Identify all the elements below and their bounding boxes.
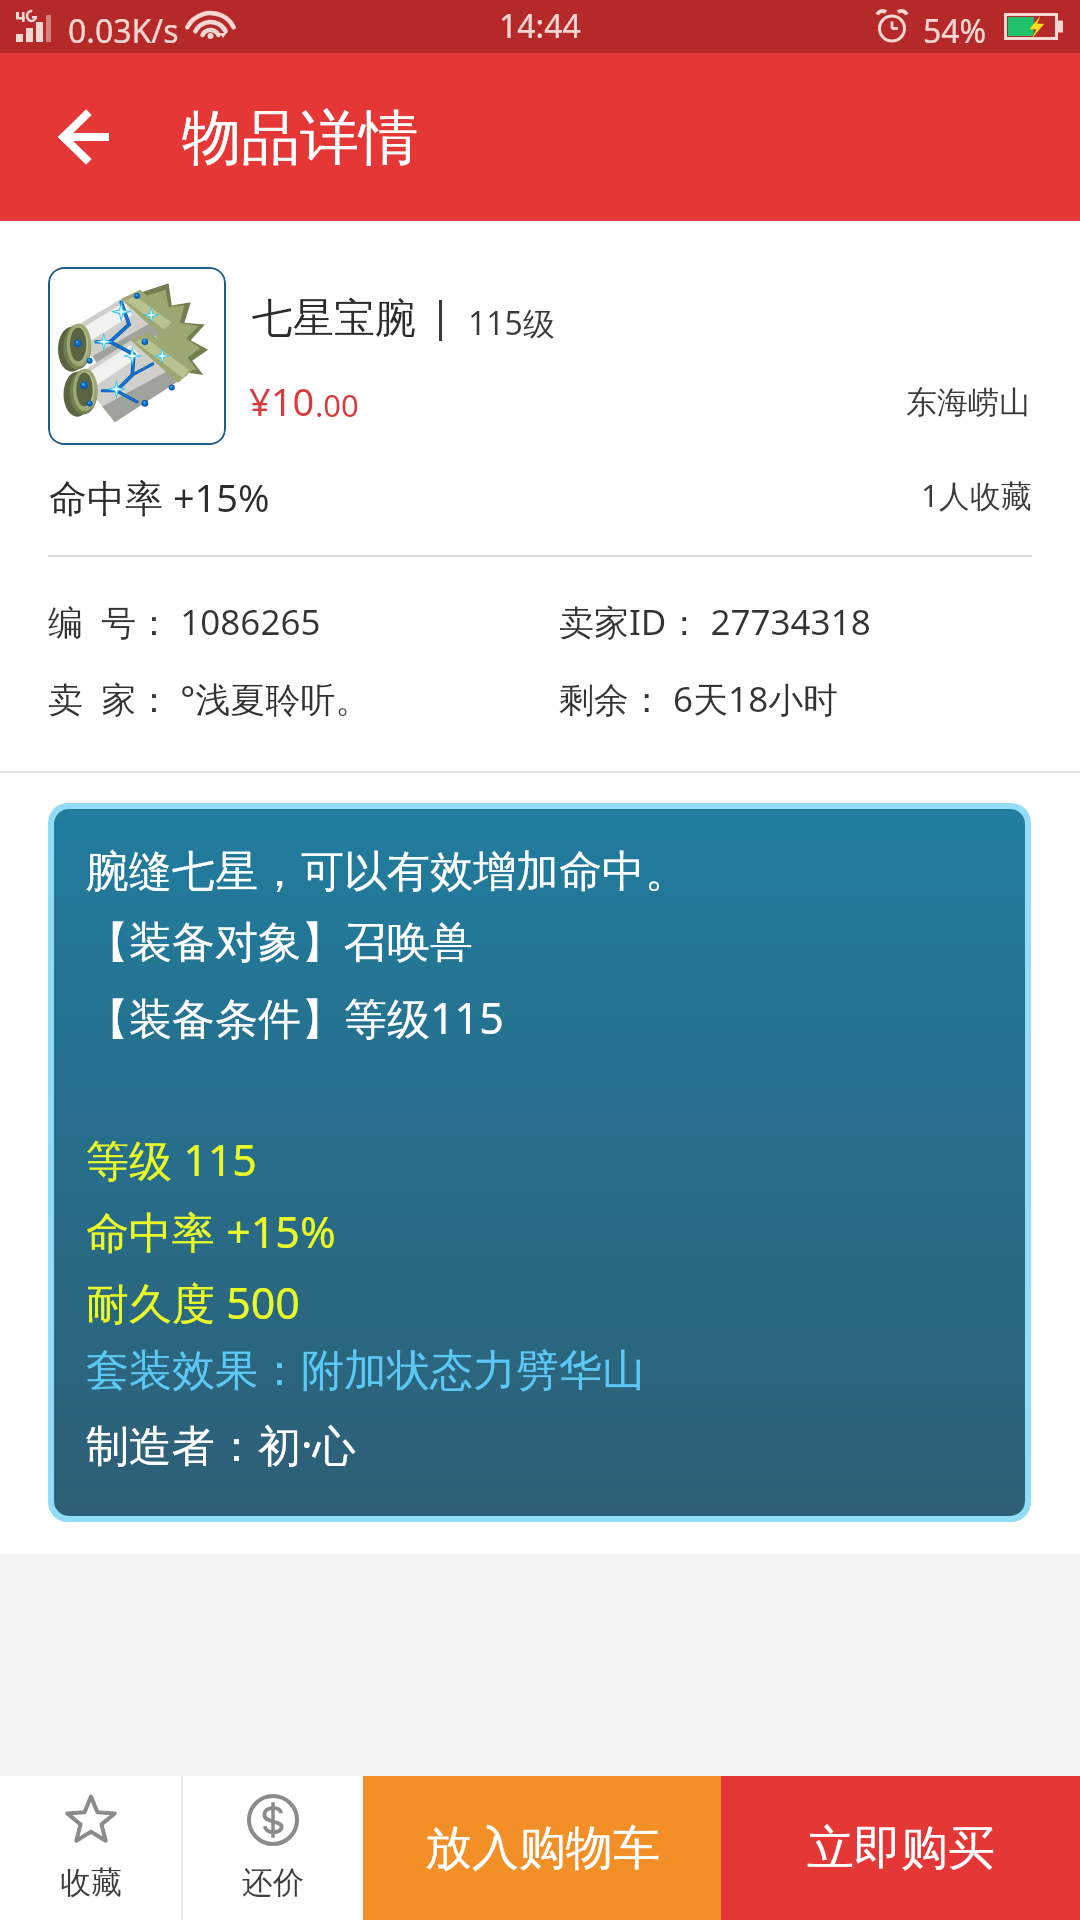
staticText: 腕缝七星，可以有效增加命中。 [86, 845, 688, 899]
staticText: 54% [923, 9, 987, 53]
button[interactable]: 商品图片 [0, 221, 1080, 555]
staticText: 立即购买 [807, 1819, 995, 1878]
button[interactable]: 还价 [183, 1776, 363, 1920]
staticText: 还价 [242, 1863, 304, 1902]
staticText: 115级 [468, 301, 555, 345]
staticText: 耐久度 500 [86, 1273, 300, 1332]
staticText: 放入购物车 [425, 1819, 660, 1878]
staticText: 七星宝腕 [252, 293, 416, 345]
staticText: 编 号： 1086265 [48, 598, 321, 646]
button[interactable]: 商品图片 [48, 267, 226, 445]
staticText: 套装效果：附加状态力劈华山 [86, 1344, 645, 1398]
staticText: 【装备对象】召唤兽 [86, 916, 473, 970]
staticText: .00 [315, 384, 359, 426]
staticText: 14:44 [499, 4, 581, 48]
staticText: 等级 115 [86, 1130, 257, 1189]
staticText: 物品详情 [182, 101, 418, 175]
button[interactable]: 收藏 [0, 1776, 181, 1920]
button[interactable]: 放入购物车 [363, 1776, 721, 1920]
staticText: ¥10 [249, 375, 315, 427]
staticText: 【装备条件】等级115 [86, 988, 504, 1047]
staticText: 命中率 +15% [49, 471, 270, 523]
staticText: 制造者：初·心 [86, 1415, 356, 1474]
staticText: 卖 家： °浅夏聆听。 [48, 675, 371, 723]
staticText: 卖家ID： 27734318 [559, 598, 871, 646]
staticText: 东海崂山 [906, 383, 1030, 422]
staticText: 1人收藏 [921, 474, 1032, 516]
staticText: 命中率 +15% [86, 1202, 336, 1261]
staticText: 收藏 [60, 1863, 122, 1902]
button[interactable]: Back [24, 77, 144, 197]
staticText: 剩余： 6天18小时 [559, 675, 839, 723]
staticText: 0.03K/s [68, 9, 179, 53]
button[interactable]: 立即购买 [721, 1776, 1080, 1920]
